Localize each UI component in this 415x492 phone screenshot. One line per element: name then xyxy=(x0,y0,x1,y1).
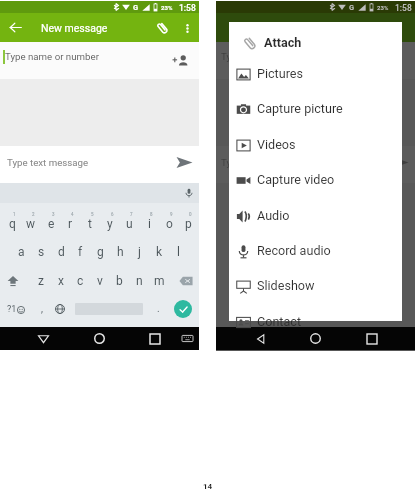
staticText: Type text message xyxy=(7,157,89,168)
button[interactable]: p xyxy=(178,211,198,237)
button[interactable]: m xyxy=(149,268,169,294)
staticText: v xyxy=(97,274,103,288)
staticText: o xyxy=(166,217,173,231)
button[interactable]: y xyxy=(100,211,120,237)
staticText: G xyxy=(349,3,355,12)
staticText: h xyxy=(117,245,124,259)
button[interactable]: z xyxy=(31,268,51,294)
staticText: 6 xyxy=(111,212,114,217)
button[interactable]: Record audio xyxy=(229,235,402,266)
button[interactable]: k xyxy=(149,239,169,265)
staticText: 23% xyxy=(377,4,389,11)
staticText: t xyxy=(88,217,92,231)
button[interactable]: ?1 xyxy=(2,296,30,322)
button[interactable]: n xyxy=(129,268,149,294)
button[interactable]: a xyxy=(11,239,31,265)
staticText: x xyxy=(58,274,64,288)
button[interactable]: , xyxy=(33,296,50,322)
staticText: Pictures xyxy=(257,66,303,81)
button[interactable]: Slideshow xyxy=(229,270,402,301)
staticText: 14 xyxy=(203,482,213,491)
button[interactable]: i xyxy=(139,211,159,237)
button[interactable]: l xyxy=(168,239,188,265)
button[interactable]: w xyxy=(21,211,41,237)
staticText: Type text message xyxy=(221,157,303,168)
button[interactable]: Home xyxy=(305,328,326,349)
button[interactable]: Videos xyxy=(229,129,402,160)
staticText: n xyxy=(136,274,143,288)
staticText: r xyxy=(68,217,73,231)
staticText: Audio xyxy=(257,208,290,223)
button[interactable]: Backspace xyxy=(175,268,197,294)
staticText: 23% xyxy=(161,4,173,11)
staticText: Videos xyxy=(257,137,296,152)
button[interactable]: v xyxy=(90,268,110,294)
staticText: a xyxy=(18,245,25,259)
button[interactable]: q xyxy=(2,211,22,237)
staticText: p xyxy=(185,217,192,231)
button[interactable]: Add contact xyxy=(169,49,191,71)
staticText: ?1 xyxy=(7,304,17,315)
staticText: 0 xyxy=(189,212,192,217)
button[interactable]: Capture picture xyxy=(229,93,402,124)
button[interactable]: d xyxy=(51,239,71,265)
button[interactable]: Home xyxy=(89,328,110,349)
button[interactable]: t xyxy=(80,211,100,237)
staticText: New message xyxy=(41,22,108,34)
button[interactable]: f xyxy=(70,239,90,265)
staticText: Contact xyxy=(257,314,302,329)
button[interactable]: h xyxy=(110,239,130,265)
button[interactable]: u xyxy=(119,211,139,237)
staticText: 1:58 xyxy=(395,3,412,13)
button[interactable]: Send xyxy=(172,150,197,175)
staticText: Attach xyxy=(264,35,302,50)
button[interactable]: Attach xyxy=(229,27,402,58)
staticText: z xyxy=(38,274,44,288)
button[interactable]: e xyxy=(41,211,61,237)
button[interactable]: b xyxy=(109,268,129,294)
staticText: g xyxy=(97,245,104,259)
staticText: 3 xyxy=(52,212,55,217)
staticText: e xyxy=(48,217,55,231)
button[interactable]: Capture video xyxy=(229,164,402,195)
staticText: c xyxy=(77,274,84,288)
staticText: Type name or number xyxy=(5,51,99,62)
staticText: , xyxy=(41,303,43,315)
button[interactable]: Shift xyxy=(2,268,24,294)
button[interactable]: Recents xyxy=(361,328,382,349)
button[interactable]: Contact xyxy=(229,306,402,337)
button[interactable]: r xyxy=(60,211,80,237)
staticText: k xyxy=(156,245,163,259)
button[interactable]: Audio xyxy=(229,200,402,231)
button[interactable]: Back xyxy=(5,17,26,38)
button[interactable]: x xyxy=(51,268,71,294)
button[interactable]: g xyxy=(90,239,110,265)
staticText: 5 xyxy=(91,212,94,217)
staticText: 8 xyxy=(150,212,153,217)
staticText: l xyxy=(177,245,180,259)
staticText: i xyxy=(148,217,151,231)
button[interactable]: s xyxy=(31,239,51,265)
staticText: 1:58 xyxy=(179,3,196,13)
button[interactable]: j xyxy=(129,239,149,265)
button[interactable]: Voice input xyxy=(180,184,198,202)
button[interactable]: o xyxy=(159,211,179,237)
button[interactable]: Pictures xyxy=(229,58,402,89)
button[interactable]: Back xyxy=(250,328,271,349)
staticText: q xyxy=(9,217,16,231)
button[interactable]: Back xyxy=(33,328,54,349)
button[interactable]: Attach xyxy=(152,17,173,38)
button[interactable]: Done xyxy=(174,300,192,318)
button[interactable]: Recents xyxy=(144,328,165,349)
button[interactable]: More options xyxy=(177,18,197,38)
staticText: 1 xyxy=(13,212,16,217)
staticText: Type name or number xyxy=(221,51,315,62)
staticText: j xyxy=(138,245,141,259)
button[interactable]: Language xyxy=(51,296,69,322)
staticText: s xyxy=(38,245,45,259)
staticText: G xyxy=(133,3,139,12)
button[interactable]: . xyxy=(150,296,167,322)
button[interactable]: c xyxy=(70,268,90,294)
button[interactable]: Keyboard xyxy=(177,328,198,349)
